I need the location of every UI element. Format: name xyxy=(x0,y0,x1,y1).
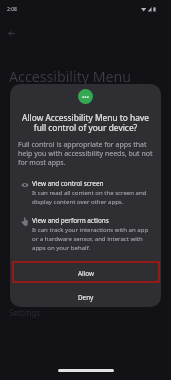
staticText: View and perform actions xyxy=(32,216,109,225)
staticText: It can track your interactions with an a… xyxy=(32,226,153,252)
staticText: It can read all content on the screen an… xyxy=(32,189,153,206)
button[interactable]: Back xyxy=(3,25,20,42)
button[interactable]: Allow xyxy=(10,263,161,284)
staticText: Settings xyxy=(9,307,41,318)
staticText: Allow Accessibility Menu to have full co… xyxy=(18,112,153,134)
button[interactable]: Deny xyxy=(10,287,161,307)
staticText: Allow xyxy=(78,269,94,278)
staticText: Accessibility Menu xyxy=(9,67,132,86)
staticText: Full control is appropriate for apps tha… xyxy=(18,140,153,167)
staticText: View and control screen xyxy=(32,179,104,188)
staticText: 2:08 xyxy=(7,6,17,13)
staticText: Deny xyxy=(78,293,94,302)
